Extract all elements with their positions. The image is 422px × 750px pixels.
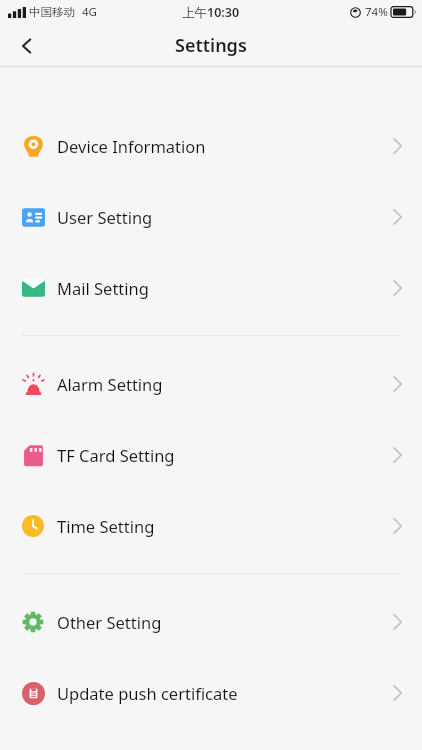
staticText: TF Card Setting [57,444,175,466]
button[interactable]: Time Setting [0,490,422,561]
staticText: Other Setting [57,611,162,633]
button[interactable]: Update push certificate [0,657,422,728]
button[interactable]: Alarm Setting [0,348,422,419]
staticText: Update push certificate [57,682,238,704]
button[interactable]: Mail Setting [0,252,422,323]
staticText: Time Setting [57,515,155,537]
button[interactable]: User Setting [0,181,422,252]
staticText: 中国移动 [29,5,75,19]
staticText: User Setting [57,206,153,228]
staticText: 4G [82,4,97,20]
staticText: 74% [365,4,388,20]
button[interactable]: Back [6,25,48,67]
staticText: 上午10:30 [182,4,240,21]
staticText: Settings [175,33,247,58]
staticText: Device Information [57,135,206,157]
button[interactable]: TF Card Setting [0,419,422,490]
staticText: Mail Setting [57,277,149,299]
staticText: Alarm Setting [57,373,163,395]
button[interactable]: Other Setting [0,586,422,657]
button[interactable]: Device Information [0,110,422,181]
